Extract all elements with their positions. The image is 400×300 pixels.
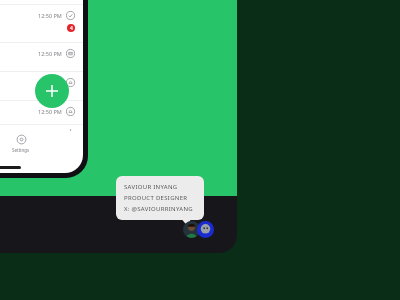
button[interactable]: Musa Aqsan bbox=[0, 0, 83, 5]
staticText: Settings bbox=[12, 147, 30, 153]
staticText: X: @SAVIOURRINYANG bbox=[124, 205, 193, 213]
staticText: PRODUCT DESIGNER bbox=[124, 194, 188, 202]
staticText: SAVIOUR INYANG bbox=[124, 183, 178, 191]
button[interactable]: Tomi Obe... bbox=[0, 101, 83, 124]
button[interactable]: Saviour Inyang avatar bbox=[183, 221, 200, 238]
staticText: 12:50 PM bbox=[38, 79, 62, 86]
button[interactable]: Tomi Obe... bbox=[0, 5, 83, 43]
button[interactable]: New message bbox=[35, 74, 69, 108]
staticText: 12:50 PM bbox=[38, 12, 62, 19]
staticText: 12:50 PM bbox=[38, 108, 62, 115]
staticText: 4 bbox=[70, 25, 73, 32]
button[interactable]: Settings bbox=[2, 132, 40, 155]
button[interactable]: Team member avatar bbox=[197, 221, 214, 238]
button[interactable]: Tome... bbox=[0, 43, 83, 72]
staticText: 12:50 PM bbox=[38, 50, 62, 57]
button[interactable]: Tomi Obe... bbox=[0, 72, 83, 101]
